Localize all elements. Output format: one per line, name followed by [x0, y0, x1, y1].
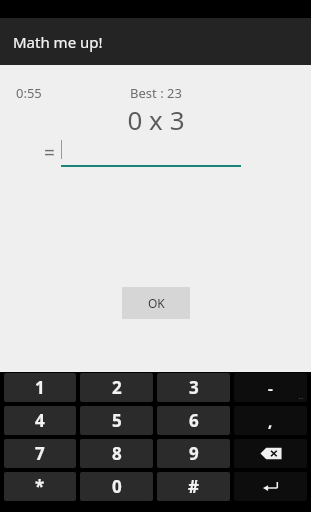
staticText: 2 [112, 376, 122, 399]
button[interactable]: 0 [80, 472, 153, 501]
staticText: , [268, 411, 273, 431]
button[interactable]: 8 [80, 439, 153, 468]
staticText: 6 [189, 409, 199, 432]
staticText: OK [148, 295, 165, 311]
button[interactable]: # [157, 472, 230, 501]
staticText: ... [299, 394, 304, 401]
staticText: = [44, 140, 55, 166]
button[interactable]: 7 [4, 439, 76, 468]
staticText: * [35, 475, 45, 498]
button[interactable]: 2 [80, 373, 153, 402]
button[interactable]: 9 [157, 439, 230, 468]
button[interactable]: - [234, 373, 307, 402]
staticText: 0:55 [16, 84, 42, 102]
staticText: 1 [35, 376, 45, 399]
button[interactable]: Enter [234, 472, 307, 501]
staticText: 0 [112, 475, 122, 498]
staticText: 5 [112, 409, 122, 432]
button[interactable]: 6 [157, 406, 230, 435]
button[interactable]: Backspace [234, 439, 307, 468]
staticText: 3 [189, 376, 199, 399]
staticText: 9 [189, 442, 199, 465]
staticText: # [188, 475, 199, 498]
staticText: 7 [35, 442, 45, 465]
button[interactable]: 3 [157, 373, 230, 402]
button[interactable]: 4 [4, 406, 76, 435]
staticText: 0 x 3 [127, 102, 185, 137]
button[interactable]: 1 [4, 373, 76, 402]
button[interactable]: * [4, 472, 76, 501]
button[interactable]: OK [122, 287, 190, 319]
staticText: 8 [112, 442, 122, 465]
button[interactable]: 5 [80, 406, 153, 435]
button[interactable] [61, 139, 241, 167]
staticText: 4 [35, 409, 45, 432]
button[interactable]: , [234, 406, 307, 435]
staticText: - [268, 378, 273, 398]
staticText: Best : 23 [130, 84, 182, 102]
staticText: Math me up! [13, 32, 103, 52]
